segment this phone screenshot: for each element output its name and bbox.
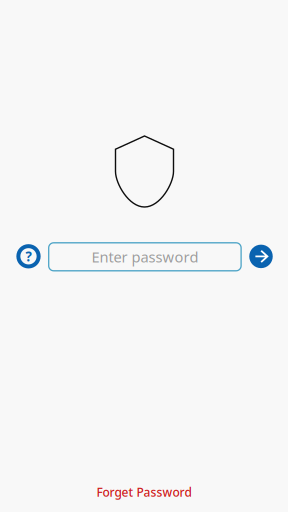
staticText: Forget Password: [96, 484, 191, 500]
button[interactable]: Submit password: [249, 244, 273, 268]
button[interactable]: Forget Password: [0, 484, 288, 500]
staticText: ?: [25, 247, 31, 265]
button[interactable]: Enter password: [49, 243, 241, 271]
button[interactable]: Password help: [16, 244, 41, 268]
staticText: Enter password: [91, 247, 198, 267]
